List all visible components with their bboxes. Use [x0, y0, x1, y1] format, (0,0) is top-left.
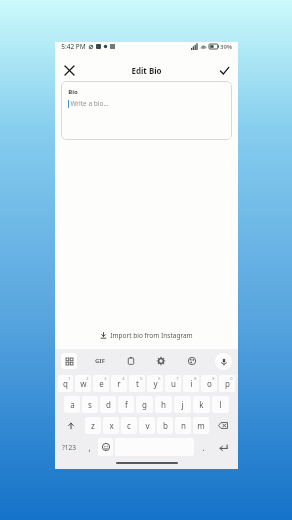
staticText: t: [136, 378, 139, 389]
button[interactable]: Import bio from Instagram: [55, 331, 238, 340]
staticText: x: [109, 420, 114, 431]
staticText: u: [171, 378, 176, 389]
button[interactable]: Save: [215, 61, 233, 79]
staticText: r: [117, 378, 121, 389]
staticText: e: [99, 378, 104, 389]
staticText: Edit Bio: [131, 65, 162, 76]
staticText: 3: [104, 376, 107, 381]
staticText: n: [181, 420, 186, 431]
staticText: .: [202, 442, 205, 453]
staticText: h: [161, 399, 166, 410]
staticText: 4: [122, 376, 125, 381]
button[interactable]: c: [121, 417, 137, 434]
button[interactable]: Clipboard: [123, 353, 139, 369]
button[interactable]: Enter: [211, 436, 236, 458]
button[interactable]: Settings: [153, 353, 169, 369]
button[interactable]: GIF: [92, 353, 108, 369]
staticText: g: [142, 399, 147, 410]
staticText: c: [127, 420, 131, 431]
staticText: 9: [212, 376, 215, 381]
staticText: j: [181, 399, 184, 410]
button[interactable]: p: [219, 375, 235, 392]
staticText: o: [207, 378, 212, 389]
staticText: w: [80, 378, 87, 389]
button[interactable]: x: [103, 417, 119, 434]
staticText: v: [145, 420, 150, 431]
staticText: Bio: [68, 88, 78, 96]
button[interactable]: Stickers: [184, 353, 200, 369]
button[interactable]: u: [165, 375, 181, 392]
button[interactable]: n: [175, 417, 191, 434]
button[interactable]: i: [183, 375, 199, 392]
staticText: 39%: [220, 43, 232, 51]
staticText: ,: [88, 442, 91, 453]
button[interactable]: Comma: [81, 436, 97, 458]
staticText: z: [91, 420, 95, 431]
button[interactable]: v: [139, 417, 155, 434]
button[interactable]: h: [155, 396, 172, 413]
staticText: 8: [194, 376, 197, 381]
button[interactable]: e: [93, 375, 109, 392]
staticText: m: [197, 420, 205, 431]
staticText: y: [153, 378, 158, 389]
button[interactable]: Keyboard modes: [61, 353, 77, 369]
button[interactable]: Backspace: [210, 415, 236, 436]
staticText: 2: [86, 376, 89, 381]
button[interactable]: Close: [60, 61, 78, 79]
button[interactable]: a: [64, 396, 80, 413]
button[interactable]: s: [82, 396, 98, 413]
staticText: q: [63, 378, 68, 389]
button[interactable]: g: [136, 396, 153, 413]
staticText: Write a bio...: [70, 99, 109, 108]
staticText: 0: [230, 376, 233, 381]
staticText: a: [70, 399, 75, 410]
staticText: l: [219, 399, 222, 410]
staticText: ?123: [62, 443, 76, 452]
button[interactable]: t: [129, 375, 145, 392]
button[interactable]: ?123: [57, 436, 81, 458]
button[interactable]: Period: [195, 436, 211, 458]
staticText: 5:42 PM: [61, 42, 86, 51]
staticText: d: [106, 399, 111, 410]
button[interactable]: j: [174, 396, 191, 413]
button[interactable]: r: [111, 375, 127, 392]
staticText: 5: [140, 376, 143, 381]
button[interactable]: f: [118, 396, 134, 413]
staticText: f: [125, 399, 128, 410]
button[interactable]: w: [75, 375, 91, 392]
button[interactable]: z: [85, 417, 101, 434]
staticText: Import bio from Instagram: [110, 331, 193, 340]
staticText: p: [225, 378, 230, 389]
button[interactable]: y: [147, 375, 163, 392]
button[interactable]: m: [193, 417, 209, 434]
staticText: 6: [158, 376, 161, 381]
button[interactable]: b: [157, 417, 173, 434]
staticText: s: [88, 399, 92, 410]
staticText: i: [190, 378, 193, 389]
button[interactable]: q: [58, 375, 73, 392]
button[interactable]: Emoji: [98, 438, 113, 456]
staticText: GIF: [95, 357, 105, 365]
staticText: b: [163, 420, 168, 431]
button[interactable]: Shift: [57, 415, 84, 436]
button[interactable]: l: [212, 396, 229, 413]
button[interactable]: k: [193, 396, 210, 413]
button[interactable]: o: [201, 375, 217, 392]
staticText: k: [199, 399, 204, 410]
button[interactable]: Bio: [61, 81, 232, 140]
staticText: 7: [176, 376, 179, 381]
button[interactable]: Voice input: [215, 353, 232, 370]
button[interactable]: d: [100, 396, 116, 413]
staticText: 1: [68, 376, 71, 381]
